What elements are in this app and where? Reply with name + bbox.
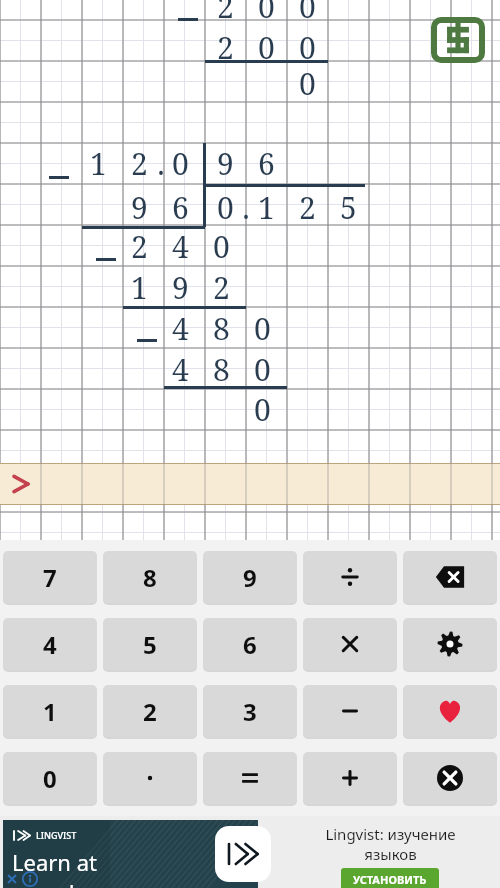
staticText: 1 bbox=[43, 695, 57, 728]
staticText: 0 bbox=[254, 349, 271, 390]
button[interactable]: Remove ads bbox=[432, 18, 484, 62]
staticText: 0 bbox=[299, 63, 316, 104]
staticText: 4 bbox=[172, 349, 189, 390]
staticText: 6 bbox=[258, 143, 275, 184]
button[interactable]: 8 bbox=[103, 551, 197, 603]
staticText: 0 bbox=[213, 226, 230, 267]
staticText: 5 bbox=[340, 187, 357, 228]
button[interactable]: 4 bbox=[3, 618, 97, 670]
staticText: УСТАНОВИТЬ bbox=[353, 872, 427, 887]
staticText: 4 bbox=[172, 308, 189, 349]
button[interactable]: 5 bbox=[103, 618, 197, 670]
staticText: 0 bbox=[258, 27, 275, 68]
staticText: 2 bbox=[217, 27, 234, 68]
button[interactable]: УСТАНОВИТЬ bbox=[353, 872, 427, 887]
button[interactable]: Backspace bbox=[403, 551, 497, 603]
button[interactable]: Multiply bbox=[303, 618, 397, 670]
staticText: 0 bbox=[299, 27, 316, 68]
staticText: 8 bbox=[143, 561, 157, 594]
button[interactable]: 0 bbox=[3, 752, 97, 804]
staticText: 4 bbox=[43, 628, 57, 661]
button[interactable]: Subtract bbox=[303, 685, 397, 737]
staticText: 9 bbox=[131, 187, 148, 228]
staticText: 2 bbox=[213, 267, 230, 308]
button[interactable]: 1 bbox=[3, 685, 97, 737]
staticText: 8 bbox=[213, 308, 230, 349]
staticText: 7 bbox=[43, 561, 57, 594]
staticText: 1 bbox=[258, 187, 275, 228]
button[interactable]: Add bbox=[303, 752, 397, 804]
staticText: 3 bbox=[243, 695, 257, 728]
staticText: 0 bbox=[254, 389, 271, 430]
button[interactable]: 6 bbox=[203, 618, 297, 670]
staticText: 8 bbox=[213, 349, 230, 390]
staticText: 0 bbox=[299, 0, 316, 27]
button[interactable]: Clear bbox=[403, 752, 497, 804]
button[interactable]: Settings bbox=[403, 618, 497, 670]
staticText: 9 bbox=[243, 561, 257, 594]
staticText: LINGVIST bbox=[36, 829, 77, 841]
staticText: 5 bbox=[143, 628, 157, 661]
staticText: 6 bbox=[243, 628, 257, 661]
staticText: 9 bbox=[217, 143, 234, 184]
staticText: 2 bbox=[143, 695, 157, 728]
staticText: 1 bbox=[90, 143, 107, 184]
staticText: 0 bbox=[172, 143, 189, 184]
staticText: 2 bbox=[131, 143, 148, 184]
staticText: 2 bbox=[299, 187, 316, 228]
button[interactable]: 3 bbox=[203, 685, 297, 737]
button[interactable]: 2 bbox=[103, 685, 197, 737]
staticText: 6 bbox=[172, 187, 189, 228]
staticText: 1 bbox=[131, 267, 148, 308]
staticText: . bbox=[242, 187, 250, 228]
staticText: 0 bbox=[258, 0, 275, 27]
button[interactable] bbox=[0, 463, 500, 505]
staticText: . bbox=[157, 143, 165, 184]
staticText: 0 bbox=[217, 187, 234, 228]
staticText: 9 bbox=[172, 267, 189, 308]
button[interactable]: Decimal point bbox=[103, 752, 197, 804]
button[interactable]: LINGVIST bbox=[0, 816, 500, 888]
staticText: 0 bbox=[254, 308, 271, 349]
button[interactable]: Divide bbox=[303, 551, 397, 603]
staticText: Learn at speed bbox=[12, 847, 97, 888]
button[interactable]: Favorite bbox=[403, 685, 497, 737]
staticText: 2 bbox=[131, 226, 148, 267]
staticText: Lingvist: изучение языков bbox=[325, 824, 456, 864]
button[interactable]: Equals bbox=[203, 752, 297, 804]
button[interactable]: 9 bbox=[203, 551, 297, 603]
staticText: 2 bbox=[217, 0, 234, 27]
staticText: 4 bbox=[172, 226, 189, 267]
button[interactable]: 7 bbox=[3, 551, 97, 603]
staticText: 0 bbox=[43, 762, 57, 795]
